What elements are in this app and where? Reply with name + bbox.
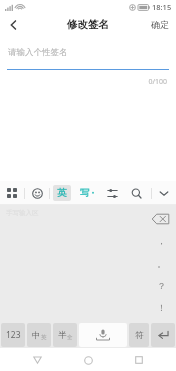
button[interactable]: Emoji <box>25 181 49 205</box>
button[interactable]: Apps <box>0 181 24 205</box>
staticText: 18:15 <box>152 2 172 12</box>
staticText: 英 <box>41 334 47 341</box>
button[interactable]: ， <box>151 233 171 247</box>
button[interactable]: Recents <box>128 349 150 371</box>
button[interactable]: 符 <box>129 323 149 347</box>
button[interactable]: Enter <box>151 323 175 347</box>
staticText: 123 <box>6 329 21 341</box>
button[interactable]: ！ <box>151 300 171 314</box>
staticText: 中 <box>32 330 41 341</box>
button[interactable]: 。 <box>151 256 171 270</box>
staticText: 手写输入区 <box>6 209 39 217</box>
staticText: 全 <box>67 334 73 341</box>
staticText: ， <box>157 235 166 246</box>
button[interactable]: 半 <box>53 323 77 347</box>
button[interactable]: 123 <box>1 323 25 347</box>
staticText: 半 <box>58 330 67 341</box>
staticText: 写 <box>80 187 90 199</box>
staticText: ！ <box>157 302 166 313</box>
button[interactable]: 确定 <box>144 14 176 35</box>
staticText: 。 <box>157 258 166 269</box>
button[interactable]: Back <box>0 14 26 35</box>
staticText: 请输入个性签名 <box>8 47 68 58</box>
button[interactable]: Hide keyboard <box>152 181 176 205</box>
staticText: 0/100 <box>0 77 167 87</box>
button[interactable]: Home <box>77 349 99 371</box>
button[interactable]: 写 <box>74 181 100 205</box>
button[interactable]: Back <box>26 349 48 371</box>
button[interactable]: 英 <box>50 181 74 205</box>
button[interactable]: ？ <box>151 278 171 292</box>
staticText: 修改签名 <box>67 18 109 31</box>
staticText: 确定 <box>151 19 169 30</box>
staticText: 英 <box>57 187 67 199</box>
button[interactable]: Search <box>124 181 148 205</box>
button[interactable]: Space <box>79 323 127 347</box>
button[interactable]: Delete <box>151 213 170 225</box>
button[interactable]: Input settings <box>100 181 124 205</box>
button[interactable]: 请输入个性签名 <box>8 47 168 69</box>
staticText: 符 <box>135 330 144 341</box>
button[interactable]: 中 <box>27 323 51 347</box>
staticText: ？ <box>157 280 166 291</box>
